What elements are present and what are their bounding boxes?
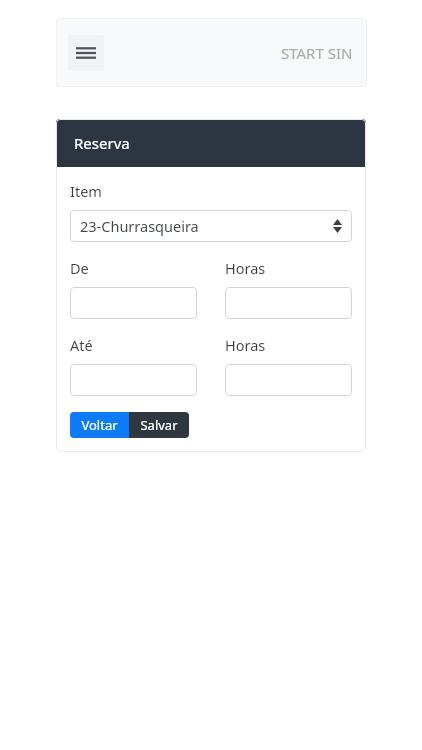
button[interactable]: Menu: [68, 35, 104, 71]
staticText: De: [70, 258, 89, 278]
button[interactable]: Salvar: [129, 412, 189, 438]
button[interactable]: [70, 287, 197, 319]
staticText: Salvar: [140, 416, 178, 434]
button[interactable]: Voltar: [70, 412, 129, 438]
staticText: Voltar: [81, 416, 118, 434]
staticText: Item: [70, 181, 102, 201]
staticText: Horas: [225, 335, 266, 355]
staticText: Horas: [225, 258, 266, 278]
staticText: Reserva: [74, 133, 130, 153]
button[interactable]: 23-Churrasqueira: [70, 210, 352, 242]
button[interactable]: [225, 287, 352, 319]
staticText: Até: [70, 335, 93, 355]
button[interactable]: [70, 364, 197, 396]
staticText: START SIN: [281, 43, 353, 63]
staticText: 23-Churrasqueira: [80, 216, 199, 236]
button[interactable]: START SIN: [281, 43, 353, 63]
button[interactable]: [225, 364, 352, 396]
